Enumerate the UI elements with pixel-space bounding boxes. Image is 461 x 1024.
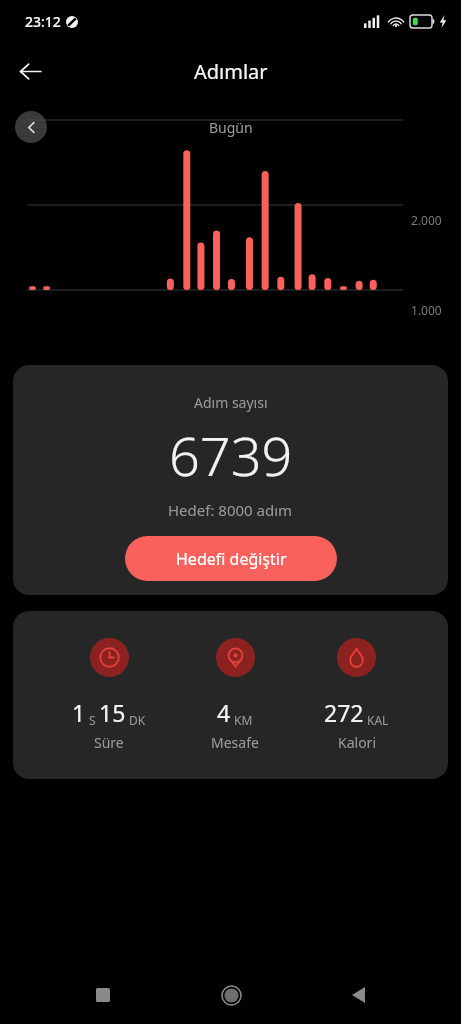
staticText: Kalori — [338, 733, 376, 752]
staticText: Mesafe — [211, 733, 259, 752]
staticText: 1.000 — [411, 302, 442, 318]
staticText: Süre — [94, 733, 124, 752]
button[interactable]: 4 — [205, 638, 265, 752]
staticText: KM — [234, 712, 253, 728]
button[interactable]: Previous day — [15, 111, 47, 143]
staticText: Hedefi değiştir — [176, 548, 287, 570]
staticText: Adımlar — [194, 58, 268, 85]
staticText: Hedef: 8000 adım — [168, 500, 293, 520]
button[interactable]: Back — [6, 47, 54, 95]
button[interactable]: 272 — [318, 638, 395, 752]
staticText: 6739 — [169, 418, 293, 492]
staticText: 23:12 — [25, 12, 61, 31]
button[interactable]: Recent apps — [79, 971, 127, 1019]
staticText: Adım sayısı — [194, 393, 268, 412]
staticText: S — [89, 712, 96, 728]
button[interactable]: Adım sayısı — [13, 365, 448, 595]
button[interactable]: Hedefi değiştir — [125, 536, 337, 581]
staticText: DK — [129, 712, 146, 728]
button[interactable]: Back — [334, 971, 382, 1019]
staticText: 2.000 — [411, 212, 442, 228]
staticText: 13 — [419, 16, 429, 27]
staticText: KAL — [367, 712, 389, 728]
button[interactable]: Home — [207, 971, 255, 1019]
staticText: 4 — [217, 697, 231, 728]
staticText: 15 — [99, 697, 126, 728]
staticText: 1 — [72, 697, 86, 728]
staticText: Bugün — [209, 118, 253, 137]
staticText: 272 — [324, 697, 364, 728]
button[interactable]: 1 — [66, 638, 152, 752]
